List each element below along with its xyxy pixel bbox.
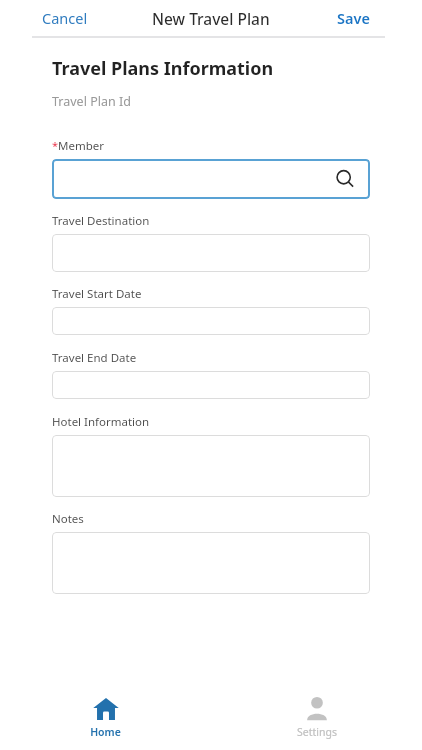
staticText: New Travel Plan	[152, 8, 270, 29]
staticText: Travel Plan Id	[52, 93, 131, 110]
staticText: Travel Plans Information	[52, 56, 274, 81]
button[interactable]	[52, 532, 370, 594]
button[interactable]	[52, 371, 370, 399]
button[interactable]	[52, 234, 370, 272]
button[interactable]: Cancel	[38, 4, 92, 32]
button[interactable]: Search member	[334, 168, 356, 190]
staticText: Travel Destination	[52, 213, 150, 229]
staticText: Travel End Date	[52, 350, 137, 366]
staticText: Hotel Information	[52, 414, 150, 430]
staticText: Save	[337, 8, 370, 28]
staticText: Settings	[297, 725, 337, 739]
button[interactable]	[52, 307, 370, 335]
button[interactable]: Save	[333, 4, 374, 32]
button[interactable]: Home	[0, 684, 211, 750]
staticText: Cancel	[42, 8, 88, 28]
button[interactable]: Search member	[52, 159, 370, 199]
staticText: Home	[90, 725, 121, 739]
staticText: Notes	[52, 511, 84, 527]
button[interactable]: Settings	[211, 684, 422, 750]
staticText: *Member	[52, 138, 105, 154]
staticText: Travel Start Date	[52, 286, 142, 302]
button[interactable]	[52, 435, 370, 497]
